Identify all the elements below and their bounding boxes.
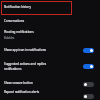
button[interactable]: Suggested actions and replies	[83, 64, 94, 69]
staticText: Conversations	[4, 19, 80, 23]
staticText: Show app icon in notifications	[4, 48, 80, 52]
button[interactable]: Show app icon in notifications	[83, 48, 94, 53]
staticText: Repeat notification alerts	[4, 90, 80, 94]
staticText: Floating notifications	[4, 30, 80, 34]
button[interactable]	[0, 45, 100, 57]
staticText: Show snooze button	[4, 81, 80, 85]
button[interactable]	[1, 1, 72, 15]
button[interactable]	[0, 58, 100, 76]
button[interactable]	[0, 78, 100, 89]
staticText: Notification history	[4, 5, 68, 9]
staticText: Suggested actions and replies notificati…	[4, 62, 64, 71]
button[interactable]	[0, 28, 100, 43]
staticText: Bubbles	[4, 36, 80, 40]
button[interactable]	[0, 16, 100, 27]
button[interactable]	[0, 89, 100, 100]
button[interactable]: Repeat notification alerts	[83, 94, 94, 99]
button[interactable]: Show snooze button	[83, 82, 94, 87]
